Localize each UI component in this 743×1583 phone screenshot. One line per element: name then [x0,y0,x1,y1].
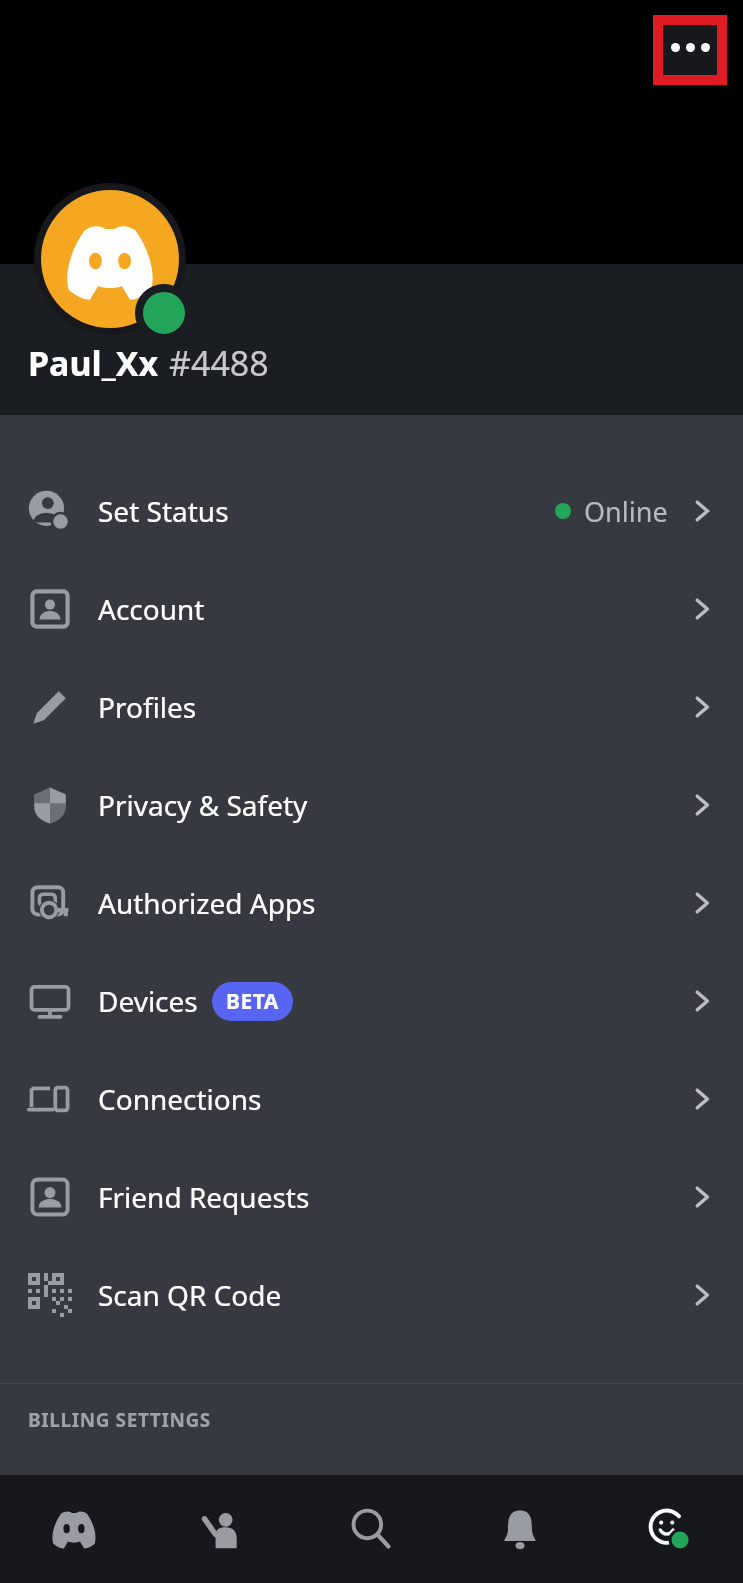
staticText: Devices [98,982,198,1020]
staticText: Connections [98,1080,262,1118]
button[interactable]: Friend Requests [0,1148,743,1246]
staticText: BETA [226,987,279,1016]
button[interactable]: Devices [0,952,743,1050]
button[interactable]: Privacy & Safety [0,756,743,854]
staticText: Set Status [98,492,229,530]
staticText: #4488 [169,340,269,386]
staticText: Privacy & Safety [98,786,308,824]
staticText: Friend Requests [98,1178,310,1216]
staticText: Authorized Apps [98,884,316,922]
staticText: Account [98,590,205,628]
button[interactable]: Notifications [445,1475,594,1583]
button[interactable]: Profiles [0,658,743,756]
staticText: Paul_Xx [28,340,159,386]
button[interactable]: Account [0,560,743,658]
button[interactable]: Authorized Apps [0,854,743,952]
button[interactable]: Set Status [0,462,743,560]
button[interactable]: Search [296,1475,445,1583]
button[interactable]: More options [663,25,717,75]
staticText: Online [584,493,668,530]
button[interactable]: Connections [0,1050,743,1148]
button[interactable]: Scan QR Code [0,1246,743,1344]
button[interactable]: Friends [148,1475,296,1583]
staticText: Profiles [98,688,197,726]
staticText: BILLING SETTINGS [28,1407,211,1433]
button[interactable]: You [594,1475,743,1583]
staticText: Scan QR Code [98,1276,282,1314]
button[interactable]: Home [0,1475,148,1583]
